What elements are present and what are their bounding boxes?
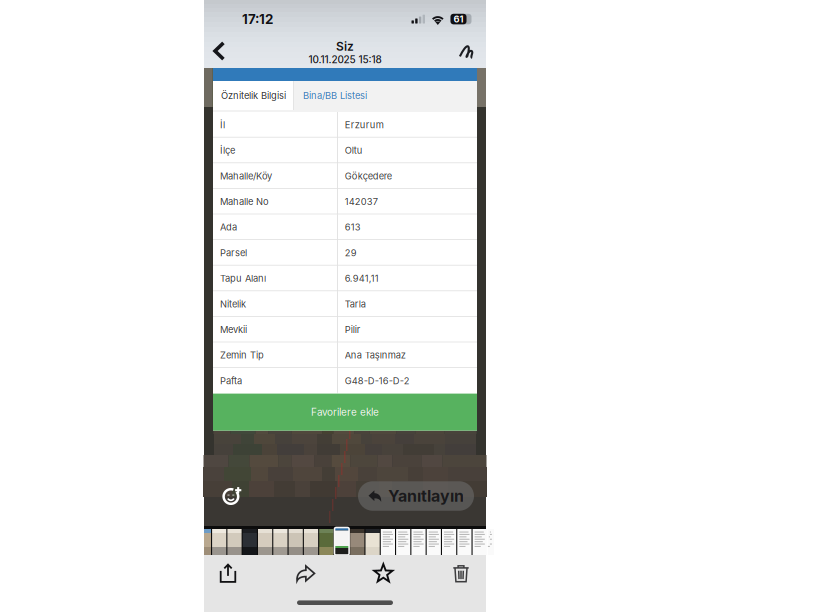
staticText: 6.941,11 <box>345 273 379 284</box>
button[interactable]: Öznitelik Bilgisi <box>213 81 294 110</box>
staticText: Bina/BB Listesi <box>303 90 367 101</box>
button[interactable]: Forward <box>286 558 326 589</box>
staticText: Pafta <box>220 375 242 386</box>
staticText: Nitelik <box>220 298 246 310</box>
button[interactable]: Favorilere ekle <box>213 394 477 431</box>
staticText: Mahalle No <box>220 196 269 207</box>
staticText: Zemin Tip <box>220 350 264 361</box>
staticText: Yanıtlayın <box>388 486 464 506</box>
staticText: Pilir <box>345 324 361 335</box>
staticText: Favorilere ekle <box>311 406 379 418</box>
button[interactable]: Share <box>208 558 248 589</box>
button[interactable]: Bina/BB Listesi <box>294 81 376 110</box>
staticText: 61 <box>453 13 463 25</box>
staticText: İlçe <box>220 145 235 156</box>
staticText: Gökçedere <box>345 170 392 182</box>
button[interactable]: Add reaction <box>217 481 247 511</box>
staticText: 29 <box>345 247 357 258</box>
staticText: Tarla <box>345 298 366 310</box>
button[interactable]: Favorite <box>363 558 403 589</box>
staticText: 142037 <box>345 196 378 207</box>
staticText: Öznitelik Bilgisi <box>221 90 286 101</box>
button[interactable]: Markup <box>452 34 482 68</box>
staticText: Mahalle/Köy <box>220 170 272 182</box>
staticText: G48-D-16-D-2 <box>345 375 410 386</box>
button[interactable]: Yanıtlayın <box>358 481 474 511</box>
staticText: Erzurum <box>345 119 384 130</box>
staticText: Ana Taşınmaz <box>345 350 406 361</box>
staticText: 17:12 <box>242 11 273 27</box>
staticText: Ada <box>220 222 237 233</box>
staticText: Siz <box>336 39 354 53</box>
staticText: Tapu Alanı <box>220 273 266 284</box>
staticText: 613 <box>345 222 361 233</box>
staticText: Parsel <box>220 247 247 258</box>
staticText: İl <box>220 119 225 130</box>
staticText: Mevkii <box>220 324 247 335</box>
staticText: 10.11.2025 15:18 <box>308 53 381 66</box>
staticText: Oltu <box>345 145 363 156</box>
button[interactable]: Back <box>204 34 234 68</box>
button[interactable]: Delete <box>441 558 481 589</box>
